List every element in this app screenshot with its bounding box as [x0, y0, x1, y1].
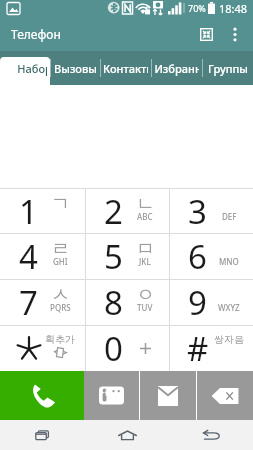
button[interactable]: 5 — [85, 234, 169, 279]
button[interactable]: Recent apps — [0, 420, 85, 450]
staticText: # — [187, 326, 209, 371]
staticText: ㅁ — [136, 237, 155, 261]
staticText: Набор — [17, 61, 47, 76]
staticText: 3 — [188, 189, 207, 233]
staticText: WXYZ — [218, 302, 240, 313]
button[interactable]: 6 — [169, 234, 253, 279]
button[interactable]: # — [169, 326, 253, 371]
button[interactable]: Add contact — [84, 371, 139, 420]
button[interactable]: Home — [85, 420, 169, 450]
staticText: ㄱ — [51, 192, 70, 216]
staticText: ABC — [137, 211, 153, 222]
button[interactable]: Избранное — [151, 51, 202, 85]
button[interactable]: Группы — [202, 51, 253, 85]
staticText: 8 — [104, 280, 123, 325]
staticText: GHI — [53, 256, 68, 267]
staticText: Группы — [208, 61, 248, 76]
button[interactable]: Collapse keypad — [190, 18, 222, 50]
button[interactable]: Вызовы — [50, 51, 100, 85]
staticText: JKL — [139, 256, 151, 267]
button[interactable]: Контакты — [100, 51, 151, 85]
staticText: 7 — [19, 280, 38, 325]
button[interactable]: 9 — [169, 280, 253, 325]
staticText: 획추가 — [45, 333, 75, 346]
button[interactable]: 3 — [169, 189, 253, 233]
staticText: Вызовы — [54, 61, 97, 76]
staticText: ㄹ — [51, 237, 70, 261]
staticText: 1 — [19, 189, 38, 233]
staticText: 6 — [188, 234, 207, 279]
button[interactable]: 8 — [85, 280, 169, 325]
staticText: ㅅ — [51, 283, 70, 307]
button[interactable]: 4 — [0, 234, 85, 279]
staticText: 70% — [188, 2, 206, 14]
staticText: 5 — [104, 234, 123, 279]
button[interactable]: 1 — [0, 189, 85, 233]
staticText: 18:48 — [219, 1, 248, 16]
button[interactable]: Call — [0, 371, 84, 420]
staticText: ㄴ — [136, 192, 155, 216]
staticText: Контакты — [103, 61, 148, 76]
staticText: Телефон — [11, 26, 61, 42]
button[interactable]: 획추가 — [0, 326, 85, 371]
staticText: DEF — [222, 211, 237, 222]
button[interactable]: 0 — [85, 326, 169, 371]
button[interactable]: 7 — [0, 280, 85, 325]
staticText: 0 — [104, 326, 123, 371]
button[interactable]: Набор — [0, 51, 50, 85]
staticText: 2 — [104, 189, 123, 233]
staticText: 쌍자음 — [214, 333, 244, 346]
staticText: TUV — [137, 302, 153, 313]
button[interactable]: 2 — [85, 189, 169, 233]
staticText: PQRS — [50, 302, 71, 313]
button[interactable]: Send message — [140, 371, 196, 420]
button[interactable]: Backspace — [197, 371, 253, 420]
staticText: MNO — [219, 256, 239, 267]
staticText: ㅇ — [136, 283, 155, 307]
button[interactable]: More options — [222, 21, 248, 47]
staticText: 4 — [19, 234, 38, 279]
button[interactable]: Back — [169, 420, 253, 450]
staticText: Избранное — [154, 61, 199, 76]
staticText: 9 — [188, 280, 207, 325]
